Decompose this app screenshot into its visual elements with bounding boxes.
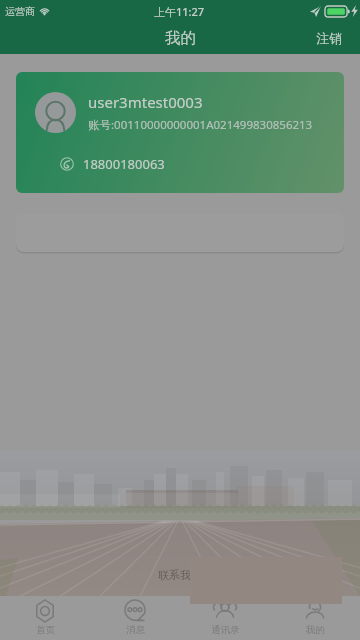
staticText: 账号:00110000000001A021499830856213 — [88, 117, 313, 133]
button[interactable]: 消息 — [90, 596, 180, 640]
staticText: user3mtest0003 — [88, 92, 203, 112]
staticText: 我的 — [306, 624, 325, 636]
staticText: 18800180063 — [83, 155, 165, 173]
button[interactable]: 首页 — [0, 596, 90, 640]
button[interactable]: user3mtest0003 — [16, 72, 344, 193]
staticText: 消息 — [126, 624, 145, 636]
staticText: 联系我 — [158, 568, 191, 582]
staticText: 上午11:27 — [154, 4, 205, 19]
staticText: 注销 — [316, 30, 342, 46]
button[interactable]: 通讯录 — [180, 596, 270, 640]
staticText: 通讯录 — [211, 624, 240, 636]
button[interactable]: 我的 — [270, 596, 360, 640]
button[interactable]: 注销 — [303, 22, 360, 54]
staticText: 我的 — [165, 28, 196, 48]
staticText: 运营商 — [5, 5, 35, 18]
staticText: 首页 — [36, 624, 55, 636]
